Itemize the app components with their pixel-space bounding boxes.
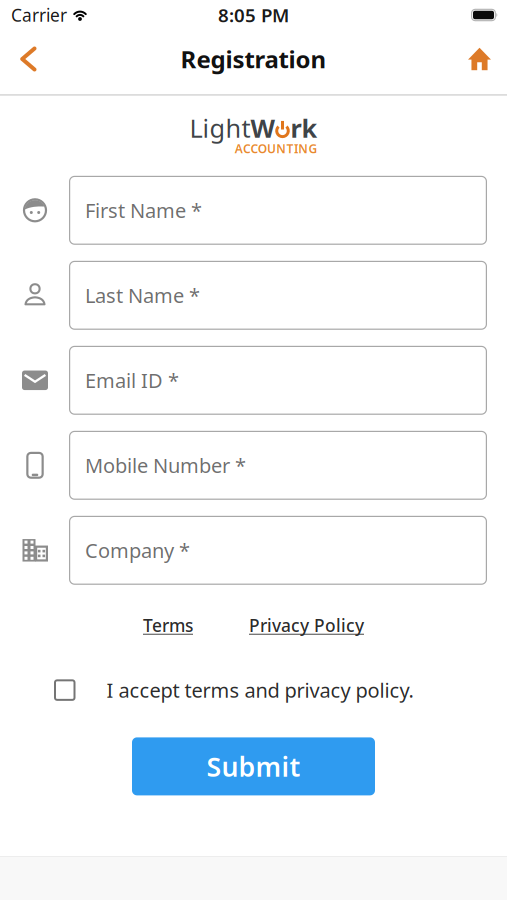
staticText: Light xyxy=(189,111,250,145)
button[interactable]: Last Name * xyxy=(69,261,487,330)
staticText: Mobile Number * xyxy=(85,452,246,479)
staticText: Carrier xyxy=(11,3,67,26)
staticText: Privacy Policy xyxy=(249,614,364,637)
button[interactable]: Back xyxy=(0,50,37,74)
staticText: Email ID * xyxy=(85,367,179,394)
staticText: Terms xyxy=(143,614,193,637)
staticText: rk xyxy=(290,111,317,145)
button[interactable]: Submit xyxy=(132,737,375,795)
button[interactable]: Mobile Number * xyxy=(69,431,487,500)
staticText: Company * xyxy=(85,537,190,564)
button[interactable]: First Name * xyxy=(69,176,487,245)
button[interactable]: Terms xyxy=(143,614,193,637)
staticText: First Name * xyxy=(85,197,202,224)
staticText: W xyxy=(250,111,274,145)
staticText: Submit xyxy=(206,749,300,784)
staticText: I accept terms and privacy policy. xyxy=(106,677,413,703)
staticText: Last Name * xyxy=(85,282,200,309)
staticText: 8:05 PM xyxy=(218,3,289,27)
button[interactable]: Privacy Policy xyxy=(249,614,364,637)
button[interactable]: Accept terms checkbox xyxy=(54,679,75,701)
button[interactable]: Company * xyxy=(69,516,487,585)
button[interactable]: Email ID * xyxy=(69,346,487,415)
staticText: Registration xyxy=(180,43,326,75)
button[interactable]: Home xyxy=(468,51,507,73)
staticText: ACCOUNTING xyxy=(235,141,317,157)
